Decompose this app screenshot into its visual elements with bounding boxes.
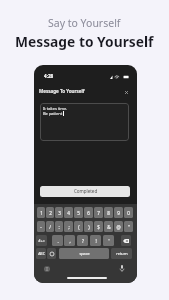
button[interactable]: It takes time. [40, 103, 129, 141]
button[interactable]: Backspace [121, 235, 131, 246]
button[interactable]: - [37, 221, 45, 232]
staticText: 2 [49, 210, 52, 216]
button[interactable]: 2 [46, 207, 54, 218]
button[interactable]: #+= [36, 235, 47, 246]
button[interactable]: : [55, 221, 63, 232]
button[interactable]: ? [77, 235, 88, 246]
staticText: space [79, 251, 90, 256]
staticText: #+= [38, 238, 45, 243]
button[interactable]: $ [94, 221, 103, 232]
staticText: ABC [38, 251, 45, 256]
staticText: Message to Yourself [15, 32, 154, 51]
staticText: " [128, 224, 130, 230]
staticText: 4 [67, 210, 70, 216]
staticText: return [116, 251, 128, 256]
staticText: ; [68, 224, 70, 230]
staticText: ) [88, 224, 90, 230]
staticText: & [107, 224, 111, 230]
button[interactable]: space [59, 248, 109, 259]
staticText: 6 [87, 210, 90, 216]
staticText: ! [95, 238, 97, 244]
staticText: 0 [127, 210, 130, 216]
staticText: 1 [40, 210, 43, 216]
staticText: 4:28 [44, 73, 54, 79]
staticText: Be patient [43, 111, 63, 116]
staticText: - [40, 224, 42, 230]
staticText: Completed [74, 188, 98, 194]
staticText: 3 [58, 210, 61, 216]
button[interactable]: Globe [44, 266, 50, 272]
button[interactable]: ! [90, 235, 101, 246]
staticText: ? [82, 238, 84, 244]
staticText: 9 [117, 210, 120, 216]
staticText: : [58, 224, 60, 230]
staticText: , [69, 238, 71, 244]
staticText: . [57, 238, 59, 244]
button[interactable]: , [64, 235, 75, 246]
button[interactable]: ' [103, 235, 114, 246]
button[interactable]: 1 [37, 207, 45, 218]
button[interactable]: Close [122, 88, 130, 96]
button[interactable]: . [52, 235, 63, 246]
button[interactable]: ( [74, 221, 83, 232]
staticText: @ [116, 224, 121, 230]
button[interactable]: @ [114, 221, 123, 232]
button[interactable]: Completed [40, 186, 130, 197]
button[interactable]: 9 [114, 207, 123, 218]
staticText: Message To Yourself [39, 88, 85, 94]
button[interactable]: Microphone [118, 264, 126, 273]
button[interactable]: Emoji [47, 248, 56, 259]
button[interactable]: 6 [84, 207, 93, 218]
staticText: 8 [107, 210, 110, 216]
staticText: ( [78, 224, 80, 230]
staticText: It takes time. [43, 106, 68, 111]
button[interactable]: 4 [64, 207, 73, 218]
staticText: / [49, 224, 51, 230]
button[interactable]: 8 [104, 207, 113, 218]
button[interactable]: 5 [74, 207, 83, 218]
button[interactable]: & [104, 221, 113, 232]
staticText: $ [97, 224, 100, 230]
button[interactable]: return [111, 248, 132, 259]
staticText: Say to Yourself [48, 16, 121, 30]
button[interactable]: / [46, 221, 54, 232]
button[interactable]: ) [84, 221, 93, 232]
button[interactable]: 0 [124, 207, 133, 218]
staticText: 7 [97, 210, 100, 216]
button[interactable]: ; [64, 221, 73, 232]
button[interactable]: 3 [55, 207, 63, 218]
button[interactable]: ABC [36, 248, 46, 259]
button[interactable]: " [124, 221, 133, 232]
staticText: 5 [77, 210, 80, 216]
button[interactable]: 7 [94, 207, 103, 218]
staticText: ' [108, 238, 110, 244]
